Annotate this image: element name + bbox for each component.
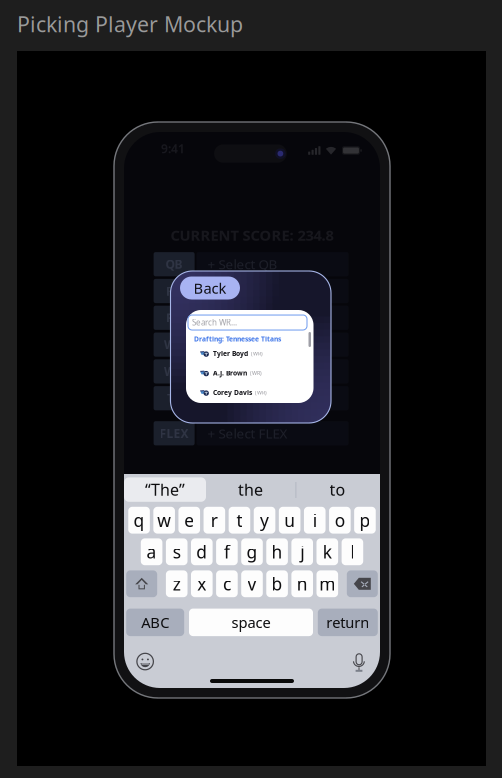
button[interactable]: k bbox=[316, 538, 338, 565]
button[interactable]: s bbox=[166, 538, 187, 565]
button[interactable]: “The” bbox=[124, 477, 206, 502]
staticText: n bbox=[297, 572, 308, 595]
button[interactable]: Shift bbox=[126, 570, 157, 597]
button[interactable]: w bbox=[153, 507, 175, 534]
button[interactable]: Dictation bbox=[353, 654, 365, 672]
staticText: QB bbox=[166, 256, 183, 272]
staticText: g bbox=[246, 540, 257, 563]
staticText: + Select WR bbox=[208, 362, 279, 380]
staticText: the bbox=[238, 479, 263, 500]
button[interactable]: u bbox=[279, 507, 300, 534]
button[interactable]: q bbox=[128, 507, 150, 534]
button[interactable]: A.J. Brown bbox=[200, 367, 305, 378]
button[interactable]: g bbox=[241, 538, 263, 565]
staticText: (WR) bbox=[255, 389, 267, 396]
button[interactable]: ABC bbox=[126, 609, 184, 636]
button[interactable]: to bbox=[295, 477, 380, 502]
staticText: e bbox=[184, 509, 194, 532]
button[interactable]: b bbox=[266, 570, 288, 597]
staticText: CURRENT SCORE: 234.8 bbox=[170, 225, 333, 245]
button[interactable]: Corey Davis bbox=[200, 387, 305, 398]
button[interactable]: return bbox=[318, 609, 378, 636]
staticText: + Select TE bbox=[208, 389, 273, 407]
button[interactable]: y bbox=[254, 507, 275, 534]
staticText: x bbox=[197, 572, 206, 595]
staticText: “The” bbox=[145, 479, 185, 500]
staticText: 9:41 bbox=[161, 140, 185, 156]
staticText: + Select RB bbox=[208, 282, 276, 300]
staticText: l bbox=[350, 540, 354, 563]
staticText: h bbox=[272, 540, 283, 563]
staticText: o bbox=[335, 509, 345, 532]
button[interactable]: z bbox=[166, 570, 187, 597]
staticText: return bbox=[326, 613, 369, 632]
button[interactable]: m bbox=[316, 570, 338, 597]
staticText: u bbox=[284, 509, 295, 532]
staticText: k bbox=[323, 540, 332, 563]
button[interactable]: Delete bbox=[347, 570, 378, 597]
button[interactable]: x bbox=[191, 570, 213, 597]
staticText: space bbox=[231, 613, 270, 632]
staticText: q bbox=[134, 509, 145, 532]
staticText: r bbox=[211, 509, 218, 532]
staticText: TE bbox=[167, 390, 181, 406]
staticText: s bbox=[173, 540, 181, 563]
staticText: Back bbox=[193, 278, 226, 298]
button[interactable]: h bbox=[266, 538, 288, 565]
button[interactable]: l bbox=[342, 538, 363, 565]
staticText: + Select FLEX bbox=[208, 424, 288, 442]
staticText: v bbox=[247, 572, 256, 595]
staticText: c bbox=[223, 572, 231, 595]
staticText: m bbox=[319, 572, 335, 595]
button[interactable]: space bbox=[189, 609, 313, 636]
staticText: f bbox=[224, 540, 230, 563]
staticText: p bbox=[359, 509, 370, 532]
staticText: w bbox=[157, 509, 171, 532]
staticText: Tyler Boyd bbox=[213, 349, 248, 358]
staticText: + Select WR bbox=[208, 336, 279, 353]
staticText: to bbox=[329, 479, 345, 500]
staticText: i bbox=[313, 509, 317, 532]
button[interactable]: o bbox=[329, 507, 351, 534]
staticText: (WR) bbox=[250, 369, 262, 377]
staticText: d bbox=[196, 540, 207, 563]
staticText: j bbox=[300, 540, 304, 563]
button[interactable]: j bbox=[291, 538, 313, 565]
staticText: FLEX bbox=[160, 425, 189, 441]
button[interactable]: a bbox=[141, 538, 162, 565]
staticText: t bbox=[236, 509, 242, 532]
button[interactable]: t bbox=[229, 507, 250, 534]
staticText: z bbox=[173, 572, 181, 595]
staticText: Corey Davis bbox=[213, 388, 252, 397]
button[interactable]: p bbox=[354, 507, 376, 534]
button[interactable]: c bbox=[216, 570, 238, 597]
staticText: b bbox=[272, 572, 283, 595]
button[interactable]: r bbox=[204, 507, 225, 534]
button[interactable]: d bbox=[191, 538, 213, 565]
staticText: ABC bbox=[141, 613, 169, 632]
staticText: RB bbox=[166, 310, 182, 326]
staticText: WR bbox=[164, 337, 184, 352]
button[interactable]: Tyler Boyd bbox=[200, 348, 305, 359]
staticText: + Select RB bbox=[208, 309, 276, 327]
staticText: Search WR... bbox=[192, 317, 237, 328]
staticText: WR bbox=[164, 363, 184, 379]
button[interactable]: v bbox=[241, 570, 263, 597]
staticText: Drafting: Tennessee Titans bbox=[194, 335, 281, 343]
button[interactable]: f bbox=[216, 538, 238, 565]
staticText: + Select QB bbox=[208, 255, 278, 273]
staticText: (WR) bbox=[251, 350, 263, 357]
staticText: y bbox=[260, 509, 269, 532]
button[interactable]: Emoji keyboard bbox=[137, 653, 153, 670]
button[interactable]: the bbox=[206, 477, 295, 502]
staticText: RB bbox=[166, 283, 182, 299]
button[interactable]: i bbox=[304, 507, 325, 534]
staticText: Picking Player Mockup bbox=[17, 10, 243, 38]
button[interactable]: n bbox=[291, 570, 313, 597]
staticText: A.J. Brown bbox=[213, 369, 247, 377]
staticText: a bbox=[147, 540, 157, 563]
button[interactable]: e bbox=[178, 507, 200, 534]
button[interactable]: Back bbox=[180, 276, 240, 299]
